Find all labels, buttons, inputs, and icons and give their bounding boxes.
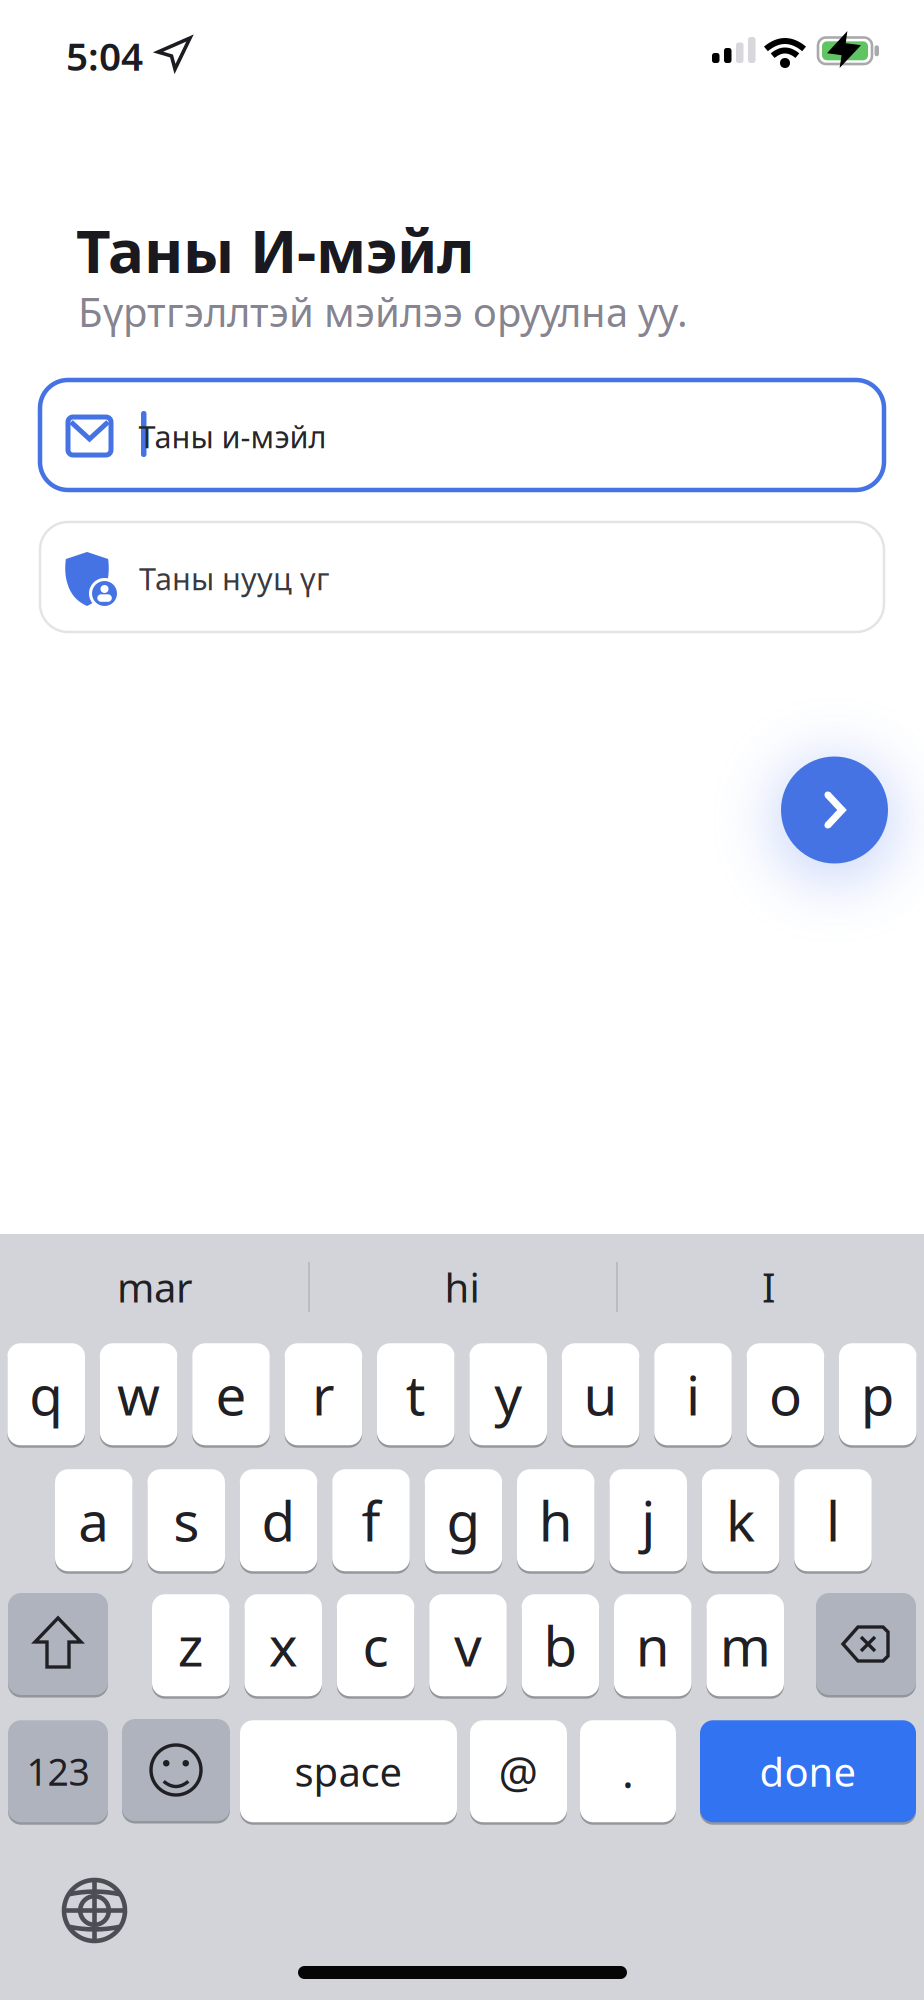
- button[interactable]: e: [192, 1342, 270, 1446]
- button[interactable]: I: [619, 1239, 919, 1335]
- staticText: m: [720, 1609, 771, 1682]
- button[interactable]: r: [285, 1342, 362, 1446]
- staticText: w: [117, 1358, 160, 1431]
- staticText: x: [269, 1609, 298, 1682]
- button[interactable]: mar: [5, 1239, 305, 1335]
- staticText: t: [406, 1358, 426, 1431]
- button[interactable]: o: [747, 1342, 824, 1446]
- staticText: Таны и-мэйл: [138, 416, 326, 457]
- button[interactable]: h: [517, 1468, 595, 1572]
- button[interactable]: g: [425, 1468, 502, 1572]
- button[interactable]: q: [7, 1342, 85, 1446]
- staticText: mar: [117, 1260, 193, 1313]
- staticText: v: [454, 1609, 482, 1682]
- staticText: g: [446, 1484, 480, 1557]
- button[interactable]: Таны нууц үг: [40, 522, 884, 632]
- staticText: e: [215, 1358, 246, 1431]
- button[interactable]: hi: [312, 1239, 612, 1335]
- staticText: n: [636, 1609, 670, 1682]
- staticText: space: [294, 1745, 402, 1798]
- button[interactable]: Emoji: [122, 1719, 230, 1823]
- staticText: r: [312, 1358, 335, 1431]
- button[interactable]: Next: [781, 756, 888, 863]
- button[interactable]: x: [244, 1593, 322, 1697]
- staticText: q: [29, 1358, 63, 1431]
- button[interactable]: a: [55, 1468, 133, 1572]
- staticText: hi: [444, 1260, 479, 1313]
- staticText: done: [759, 1745, 856, 1798]
- button[interactable]: w: [100, 1342, 177, 1446]
- button[interactable]: j: [609, 1468, 687, 1572]
- button[interactable]: p: [839, 1342, 917, 1446]
- staticText: Таны И-мэйл: [76, 210, 474, 290]
- staticText: 5:04: [66, 30, 143, 81]
- staticText: @: [498, 1742, 538, 1800]
- staticText: f: [361, 1484, 380, 1557]
- button[interactable]: k: [702, 1468, 779, 1572]
- button[interactable]: z: [152, 1593, 230, 1697]
- button[interactable]: Next keyboard: [64, 1880, 125, 1941]
- button[interactable]: m: [706, 1593, 784, 1697]
- staticText: b: [543, 1609, 577, 1682]
- staticText: h: [539, 1484, 573, 1557]
- staticText: l: [826, 1484, 840, 1557]
- button[interactable]: i: [654, 1342, 732, 1446]
- staticText: a: [78, 1484, 109, 1557]
- button[interactable]: u: [562, 1342, 639, 1446]
- button[interactable]: .: [580, 1719, 676, 1823]
- staticText: u: [584, 1358, 618, 1431]
- button[interactable]: b: [522, 1593, 599, 1697]
- staticText: I: [762, 1260, 776, 1313]
- staticText: k: [726, 1484, 755, 1557]
- staticText: y: [494, 1358, 522, 1431]
- button[interactable]: space: [240, 1719, 457, 1823]
- staticText: Бүртгэллтэй мэйлээ оруулна уу.: [78, 285, 688, 338]
- staticText: Таны нууц үг: [139, 558, 329, 599]
- staticText: p: [861, 1358, 895, 1431]
- button[interactable]: f: [332, 1468, 410, 1572]
- staticText: c: [363, 1609, 389, 1682]
- staticText: o: [769, 1358, 802, 1431]
- staticText: j: [641, 1484, 655, 1557]
- staticText: i: [686, 1358, 700, 1431]
- button[interactable]: Delete: [816, 1593, 916, 1697]
- staticText: s: [173, 1484, 199, 1557]
- button[interactable]: n: [614, 1593, 692, 1697]
- button[interactable]: s: [147, 1468, 225, 1572]
- button[interactable]: t: [377, 1342, 455, 1446]
- staticText: .: [622, 1742, 634, 1800]
- button[interactable]: Shift: [8, 1593, 108, 1697]
- button[interactable]: d: [240, 1468, 317, 1572]
- button[interactable]: y: [469, 1342, 547, 1446]
- button[interactable]: c: [337, 1593, 414, 1697]
- button[interactable]: Таны и-мэйл: [40, 380, 884, 490]
- staticText: z: [178, 1609, 204, 1682]
- button[interactable]: done: [700, 1719, 916, 1823]
- button[interactable]: v: [429, 1593, 507, 1697]
- button[interactable]: 123: [8, 1719, 108, 1823]
- staticText: d: [262, 1484, 296, 1557]
- button[interactable]: @: [470, 1719, 567, 1823]
- button[interactable]: l: [794, 1468, 872, 1572]
- staticText: 123: [26, 1746, 89, 1796]
